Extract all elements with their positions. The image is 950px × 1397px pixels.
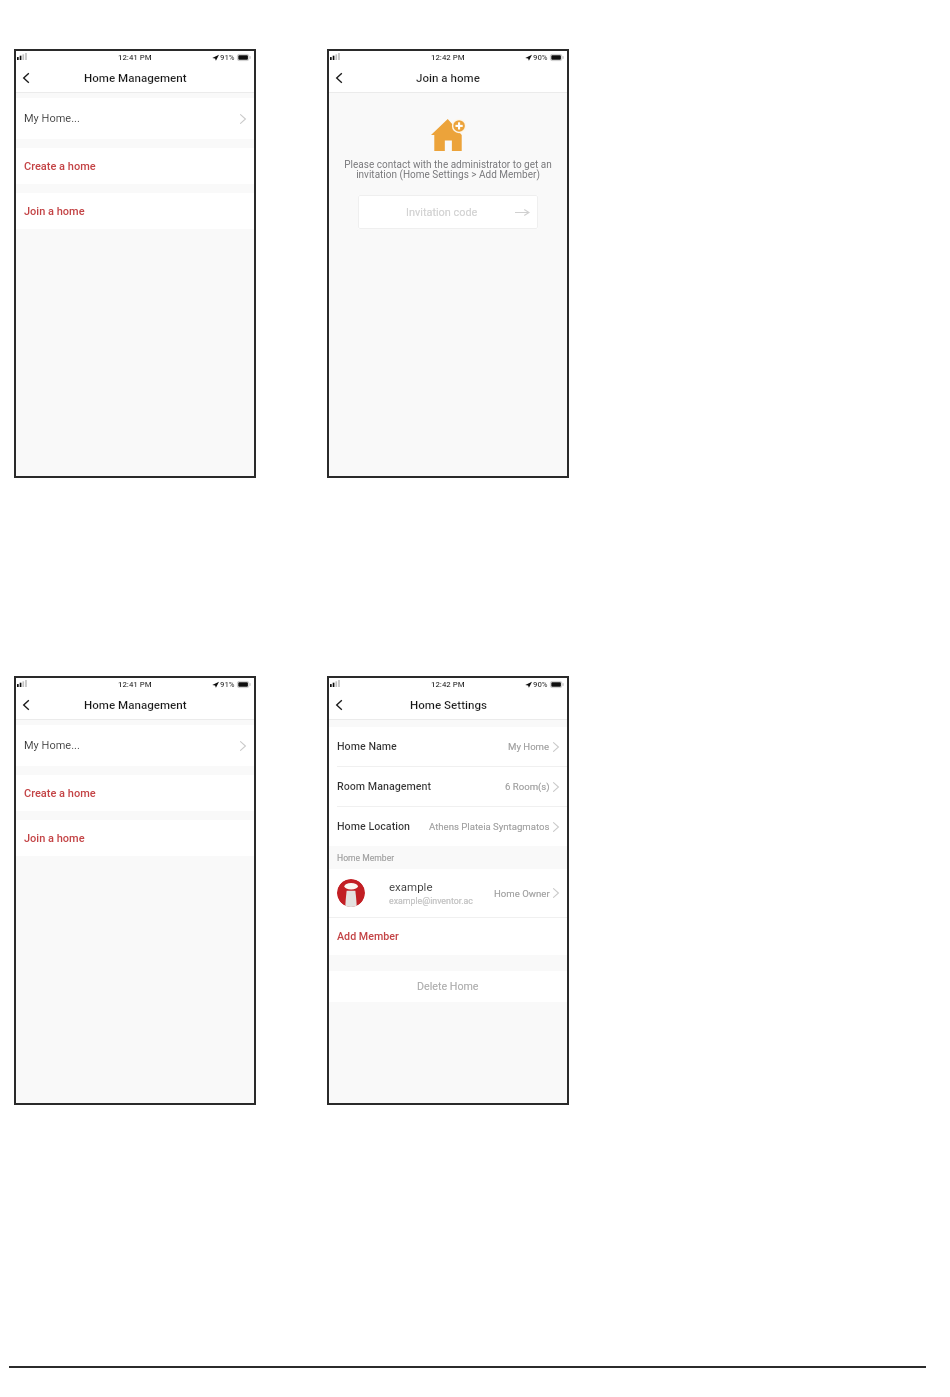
button[interactable]: Join a home xyxy=(15,820,255,856)
button[interactable]: My Home... xyxy=(15,98,255,139)
staticText: Invitation code xyxy=(406,206,478,219)
staticText: Join a home xyxy=(24,205,85,218)
staticText: 12:42 PM xyxy=(431,680,465,689)
staticText: My Home xyxy=(508,741,550,752)
button[interactable]: Room Management xyxy=(328,767,568,806)
staticText: Join a home xyxy=(416,71,480,85)
staticText: My Home... xyxy=(24,112,80,125)
staticText: 91% xyxy=(220,680,235,689)
button[interactable]: Back xyxy=(329,695,349,715)
staticText: 12:41 PM xyxy=(118,53,152,62)
button[interactable]: My Home... xyxy=(15,725,255,766)
button[interactable]: Create a home xyxy=(15,775,255,811)
staticText: Add Member xyxy=(337,930,399,943)
button[interactable]: Home Name xyxy=(328,727,568,766)
staticText: Join a home xyxy=(24,832,85,845)
staticText: 90% xyxy=(533,680,548,689)
staticText: 6 Room(s) xyxy=(505,781,550,792)
staticText: Create a home xyxy=(24,160,96,173)
button[interactable]: Back xyxy=(16,695,36,715)
staticText: 91% xyxy=(220,53,235,62)
staticText: Home Management xyxy=(84,71,187,85)
button[interactable]: Member avatar xyxy=(328,869,568,917)
staticText: Home Settings xyxy=(410,698,487,712)
button[interactable]: Add Member xyxy=(328,918,568,955)
button[interactable]: Back xyxy=(16,68,36,88)
staticText: 90% xyxy=(533,53,548,62)
button[interactable]: Delete Home xyxy=(328,971,568,1002)
staticText: Create a home xyxy=(24,787,96,800)
button[interactable]: Create a home xyxy=(15,148,255,184)
staticText: example xyxy=(389,880,433,893)
staticText: Please contact with the administrator to… xyxy=(332,159,564,181)
staticText: Home Member xyxy=(337,853,395,863)
button[interactable]: Home Location xyxy=(328,807,568,846)
staticText: My Home... xyxy=(24,739,80,752)
staticText: example@inventor.ac xyxy=(389,896,473,906)
staticText: Delete Home xyxy=(417,980,479,993)
staticText: 12:41 PM xyxy=(118,680,152,689)
staticText: Home Location xyxy=(337,820,410,833)
button[interactable]: Join a home xyxy=(15,193,255,229)
staticText: Room Management xyxy=(337,780,432,793)
staticText: Home Owner xyxy=(494,888,550,899)
other: Member avatar xyxy=(337,879,365,907)
button[interactable]: Invitation code xyxy=(358,195,538,229)
staticText: Home Management xyxy=(84,698,187,712)
staticText: 12:42 PM xyxy=(431,53,465,62)
staticText: Athens Plateia Syntagmatos xyxy=(429,821,550,832)
button[interactable]: Back xyxy=(329,68,349,88)
staticText: Home Name xyxy=(337,740,397,753)
